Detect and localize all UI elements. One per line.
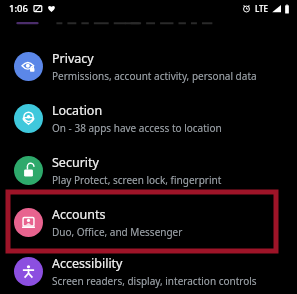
staticText: Accessibility [52, 255, 123, 272]
staticText: Play Protect, screen lock, fingerprint [52, 173, 222, 187]
staticText: Security [52, 154, 99, 171]
staticText: On - 38 apps have access to location [52, 121, 222, 135]
staticText: Permissions, account activity, personal … [52, 69, 257, 83]
staticText: Privacy [52, 50, 94, 67]
staticText: 1:06 [9, 2, 28, 15]
button[interactable]: Accounts [0, 196, 297, 248]
button[interactable]: Privacy [0, 40, 297, 92]
staticText: Duo, Office, and Messenger [52, 225, 183, 239]
button[interactable]: Security [0, 144, 297, 196]
staticText: Screen readers, display, interaction con… [52, 274, 257, 288]
button[interactable]: Location [0, 92, 297, 144]
staticText: Location [52, 102, 103, 119]
staticText: LTE [255, 3, 269, 14]
staticText: Accounts [52, 206, 106, 223]
button[interactable]: Accessibility [0, 248, 297, 294]
